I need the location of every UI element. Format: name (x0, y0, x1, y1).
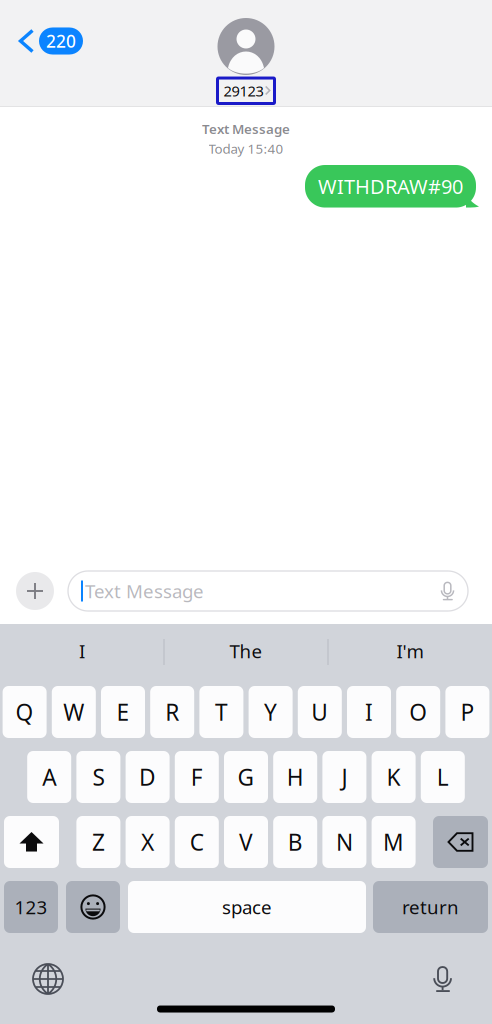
button[interactable]: U (298, 686, 342, 738)
staticText: I'm (396, 639, 423, 663)
staticText: return (402, 895, 459, 919)
button[interactable]: 220 (0, 19, 128, 63)
button[interactable]: E (101, 686, 145, 738)
button[interactable]: W (52, 686, 96, 738)
staticText: Today 15:40 (208, 140, 283, 157)
staticText: P (460, 697, 474, 727)
button[interactable]: Y (249, 686, 293, 738)
staticText: 123 (14, 895, 47, 919)
button[interactable]: Z (76, 816, 120, 868)
staticText: L (437, 762, 449, 792)
staticText: I (79, 639, 85, 663)
button[interactable]: X (126, 816, 170, 868)
button[interactable]: F (175, 751, 219, 803)
button[interactable]: T (199, 686, 243, 738)
staticText: X (141, 827, 154, 857)
button[interactable]: B (273, 816, 317, 868)
staticText: G (237, 762, 254, 792)
button[interactable]: C (175, 816, 219, 868)
button[interactable]: G (224, 751, 268, 803)
staticText: C (190, 827, 204, 857)
staticText: T (215, 697, 228, 727)
button[interactable]: I'm (328, 626, 492, 676)
staticText: WITHDRAW#90 (318, 173, 463, 200)
button[interactable]: Dictate (420, 956, 466, 1002)
button[interactable]: M (372, 816, 416, 868)
button[interactable]: A (27, 751, 71, 803)
staticText: B (288, 827, 303, 857)
staticText: 220 (46, 29, 76, 52)
button[interactable]: Add attachment (16, 572, 54, 610)
button[interactable]: L (421, 751, 465, 803)
staticText: H (287, 762, 304, 792)
staticText: V (239, 827, 253, 857)
staticText: The (229, 639, 262, 663)
button[interactable]: S (76, 751, 120, 803)
button[interactable]: 123 (4, 881, 58, 933)
staticText: 29123 (223, 81, 263, 100)
button[interactable]: H (273, 751, 317, 803)
button[interactable]: R (150, 686, 194, 738)
staticText: O (409, 697, 427, 727)
button[interactable]: 29123 (217, 78, 274, 103)
staticText: Text Message (202, 120, 290, 138)
button[interactable]: Delete (433, 816, 488, 868)
staticText: I (365, 697, 373, 727)
staticText: W (63, 697, 84, 727)
staticText: Z (92, 827, 105, 857)
button[interactable]: Shift (4, 816, 59, 868)
staticText: N (336, 827, 353, 857)
staticText: E (116, 697, 129, 727)
button[interactable]: return (373, 881, 488, 933)
button[interactable]: space (128, 881, 366, 933)
staticText: J (341, 762, 347, 792)
button[interactable]: Switch keyboard (25, 956, 71, 1002)
button[interactable]: O (396, 686, 440, 738)
staticText: R (165, 697, 179, 727)
button[interactable]: The (164, 626, 328, 676)
button[interactable]: Q (3, 686, 47, 738)
staticText: M (383, 827, 404, 857)
staticText: A (42, 762, 56, 792)
button[interactable]: K (372, 751, 416, 803)
staticText: Y (264, 697, 277, 727)
staticText: D (139, 762, 156, 792)
button[interactable]: P (445, 686, 489, 738)
button[interactable]: J (322, 751, 366, 803)
button[interactable]: I (347, 686, 391, 738)
button[interactable]: I (0, 626, 164, 676)
button[interactable]: N (322, 816, 366, 868)
staticText: Text Message (85, 579, 204, 603)
staticText: S (92, 762, 104, 792)
staticText: Q (16, 697, 34, 727)
staticText: U (311, 697, 328, 727)
button[interactable]: Emoji (66, 881, 120, 933)
staticText: F (191, 762, 203, 792)
button[interactable]: D (126, 751, 170, 803)
staticText: K (387, 762, 401, 792)
staticText: space (222, 895, 272, 919)
button[interactable]: V (224, 816, 268, 868)
